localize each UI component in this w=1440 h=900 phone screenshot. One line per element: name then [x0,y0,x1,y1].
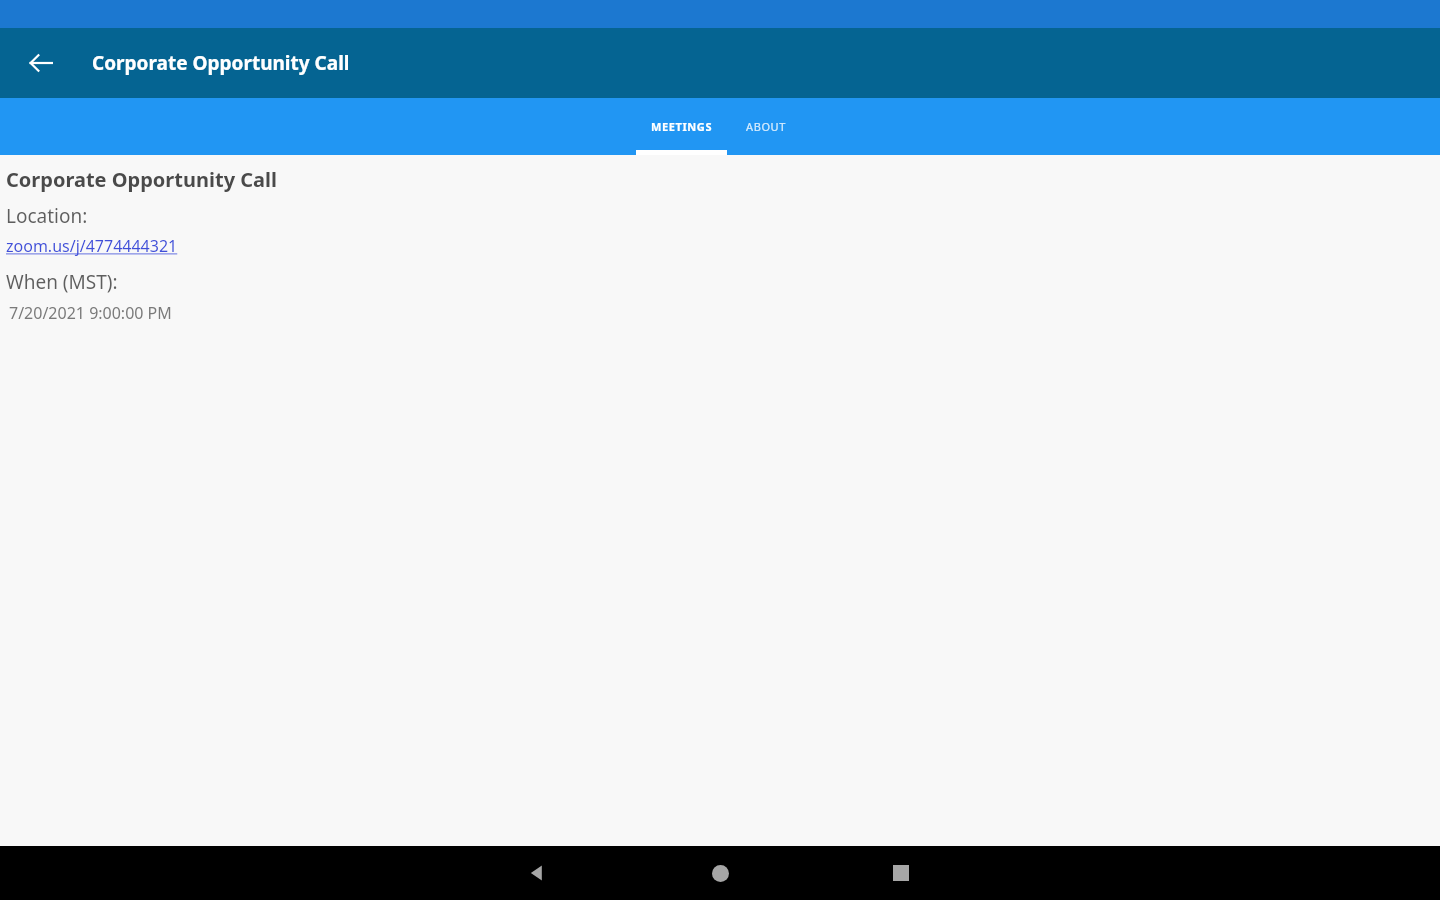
button[interactable]: ABOUT [727,98,805,155]
button[interactable]: zoom.us/j/4774444321 [6,235,178,257]
button[interactable]: Home [690,846,750,900]
staticText: Corporate Opportunity Call [92,50,350,76]
staticText: MEETINGS [651,119,713,134]
staticText: zoom.us/j/4774444321 [6,235,178,257]
staticText: When (MST): [6,269,118,295]
button[interactable]: MEETINGS [636,98,727,155]
staticText: ABOUT [746,119,786,134]
staticText: 7/20/2021 9:00:00 PM [9,302,172,324]
button[interactable]: Back [507,846,567,900]
staticText: Corporate Opportunity Call [6,166,277,193]
staticText: Location: [6,203,88,229]
button[interactable]: Back [17,39,65,87]
button[interactable]: Recent apps [871,846,931,900]
